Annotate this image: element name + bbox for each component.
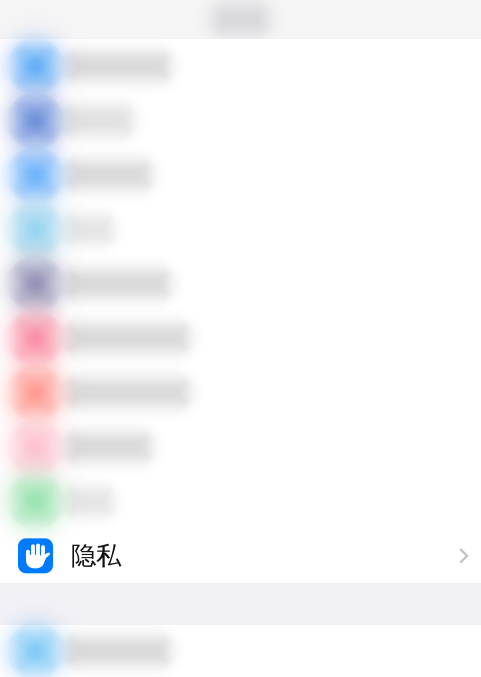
button[interactable]: 隐私 — [0, 529, 481, 583]
button[interactable] — [0, 311, 481, 365]
button[interactable] — [0, 93, 481, 148]
button[interactable] — [0, 257, 481, 311]
button[interactable] — [0, 365, 481, 420]
button[interactable] — [0, 624, 481, 677]
staticText: 隐私 — [71, 540, 121, 571]
button[interactable] — [0, 39, 481, 93]
button[interactable] — [0, 148, 481, 202]
button[interactable] — [0, 420, 481, 474]
button[interactable] — [0, 202, 481, 257]
button[interactable] — [0, 474, 481, 529]
